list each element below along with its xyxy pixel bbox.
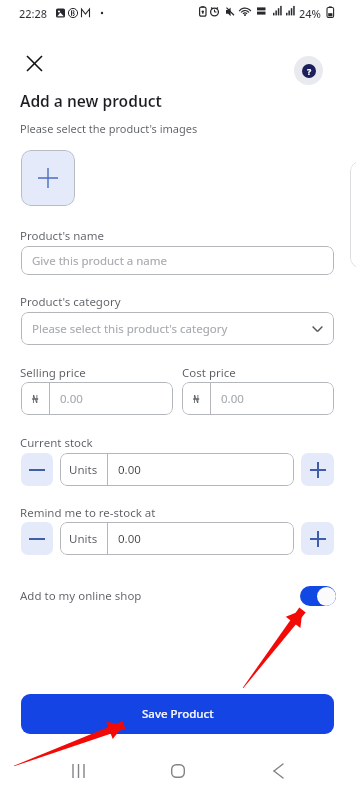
staticText: 24%: [299, 6, 321, 21]
staticText: Product's category: [20, 294, 121, 310]
button[interactable]: Save Product: [21, 694, 334, 734]
staticText: Please select this product's category: [32, 321, 228, 337]
button[interactable]: Close: [19, 48, 49, 78]
staticText: Remind me to re-stock at: [20, 505, 156, 521]
staticText: 0.00: [118, 462, 141, 478]
button[interactable]: Decrease: [21, 522, 53, 555]
staticText: Selling price: [20, 365, 86, 381]
button[interactable]: Increase: [301, 522, 334, 555]
staticText: Save Product: [142, 706, 214, 722]
staticText: 0.00: [60, 391, 83, 407]
button[interactable]: Recents: [55, 753, 101, 789]
staticText: Add to my online shop: [20, 588, 142, 604]
button[interactable]: Add to my online shop: [300, 586, 336, 606]
staticText: Please select the product's images: [20, 121, 198, 136]
staticText: Add a new product: [20, 90, 162, 111]
button[interactable]: Units: [60, 453, 294, 486]
button[interactable]: Back: [255, 753, 301, 789]
staticText: Current stock: [20, 435, 93, 451]
button[interactable]: Give this product a name: [21, 246, 334, 275]
button[interactable]: Increase: [301, 453, 334, 486]
staticText: Units: [69, 462, 98, 478]
staticText: Units: [69, 531, 98, 547]
staticText: 0.00: [221, 391, 244, 407]
button[interactable]: Home: [155, 753, 201, 789]
staticText: ?: [307, 65, 312, 77]
button[interactable]: Add product image: [21, 150, 75, 206]
staticText: Product's name: [20, 228, 105, 244]
staticText: Give this product a name: [32, 253, 168, 269]
staticText: Cost price: [182, 365, 236, 381]
button[interactable]: ₦: [21, 382, 173, 415]
staticText: 22:28: [19, 6, 48, 21]
button[interactable]: Decrease: [21, 453, 53, 486]
button[interactable]: ₦: [182, 382, 334, 415]
staticText: ₦: [32, 391, 39, 406]
button[interactable]: Please select this product's category: [21, 312, 334, 345]
staticText: 0.00: [118, 531, 141, 547]
staticText: ₦: [193, 391, 200, 406]
button[interactable]: Help: [294, 56, 323, 85]
button[interactable]: Units: [60, 522, 294, 555]
